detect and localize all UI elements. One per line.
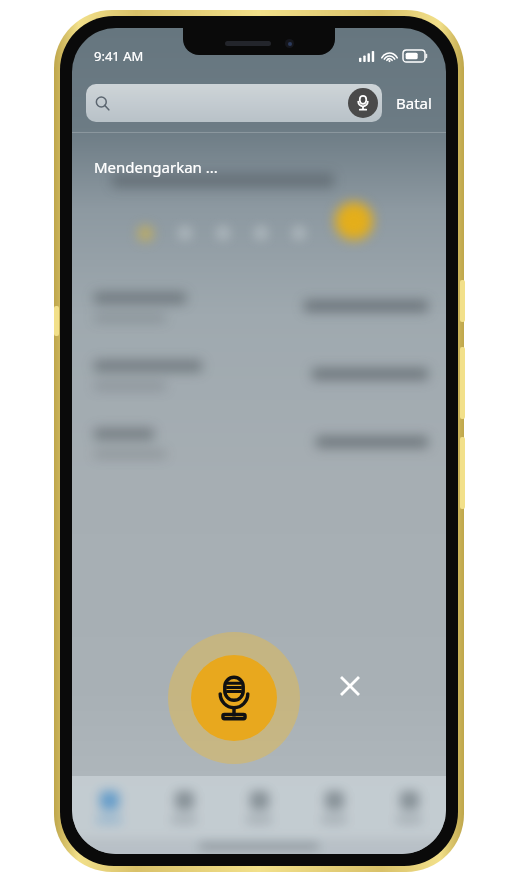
staticText: Mendengarkan ... bbox=[94, 157, 218, 177]
staticText: Batal bbox=[396, 93, 432, 113]
button[interactable]: Pencarian suara bbox=[86, 84, 382, 122]
button[interactable]: Mikrofon bbox=[168, 632, 300, 764]
button[interactable]: Tutup bbox=[328, 664, 372, 708]
staticText: 9:41 AM bbox=[94, 47, 144, 65]
button[interactable] bbox=[72, 776, 146, 838]
button[interactable] bbox=[221, 776, 296, 838]
button[interactable]: Pencarian suara bbox=[348, 88, 378, 118]
button[interactable]: Batal bbox=[394, 87, 434, 119]
button[interactable] bbox=[296, 776, 371, 838]
button[interactable] bbox=[371, 776, 446, 838]
button[interactable] bbox=[146, 776, 221, 838]
